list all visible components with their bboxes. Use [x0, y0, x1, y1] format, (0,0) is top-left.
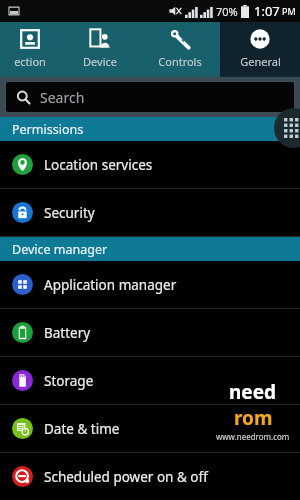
- staticText: Battery: [44, 324, 91, 342]
- staticText: Device: [83, 54, 117, 69]
- staticText: ection: [14, 54, 46, 69]
- button[interactable]: Device: [60, 22, 140, 77]
- button[interactable]: Controls: [140, 22, 220, 77]
- button[interactable]: Battery: [0, 309, 300, 356]
- staticText: General: [240, 54, 281, 69]
- button[interactable]: Scheduled power on & off: [0, 453, 300, 500]
- staticText: Storage: [44, 372, 94, 390]
- staticText: Application manager: [44, 276, 177, 294]
- staticText: www.needrom.com: [216, 431, 290, 442]
- button[interactable]: General: [220, 22, 300, 77]
- staticText: need: [229, 379, 277, 405]
- button[interactable]: Date & time: [0, 405, 300, 452]
- staticText: Device manager: [12, 241, 108, 258]
- button[interactable]: Location services: [0, 141, 300, 188]
- staticText: Date & time: [44, 420, 120, 438]
- button[interactable]: Application manager: [0, 261, 300, 308]
- staticText: Permissions: [12, 121, 84, 138]
- staticText: 70%: [216, 4, 238, 19]
- staticText: rom: [234, 405, 273, 431]
- staticText: Controls: [158, 54, 202, 69]
- button[interactable]: Apps: [274, 108, 300, 148]
- staticText: Search: [40, 88, 85, 107]
- staticText: 1:07: [254, 2, 280, 20]
- staticText: Location services: [44, 156, 153, 174]
- staticText: PM: [282, 5, 296, 17]
- button[interactable]: Search: [6, 82, 294, 112]
- button[interactable]: Storage: [0, 357, 300, 404]
- staticText: Security: [44, 204, 95, 222]
- button[interactable]: ection: [0, 22, 60, 77]
- button[interactable]: Security: [0, 189, 300, 236]
- staticText: Scheduled power on & off: [44, 468, 208, 486]
